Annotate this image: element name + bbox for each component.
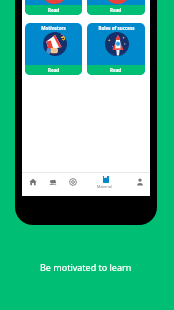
staticText: Be motivated to learn bbox=[40, 261, 132, 273]
button[interactable]: Rules of success bbox=[87, 23, 145, 75]
button[interactable]: Profile bbox=[130, 173, 150, 196]
button[interactable]: Motivators bbox=[25, 23, 82, 75]
button[interactable]: Habits bbox=[25, 0, 82, 15]
button[interactable]: Goals bbox=[63, 173, 83, 196]
button[interactable]: Material bbox=[83, 173, 130, 196]
button[interactable]: Library bbox=[43, 173, 63, 196]
staticText: Read bbox=[110, 7, 122, 13]
button[interactable]: Goals bbox=[87, 0, 145, 15]
button[interactable]: Home bbox=[22, 173, 43, 196]
staticText: Read bbox=[110, 67, 122, 73]
staticText: Read bbox=[48, 7, 60, 13]
staticText: Rules of success bbox=[98, 25, 135, 31]
staticText: Material bbox=[97, 184, 112, 189]
staticText: Read bbox=[48, 67, 60, 73]
staticText: Motivators bbox=[41, 25, 66, 31]
